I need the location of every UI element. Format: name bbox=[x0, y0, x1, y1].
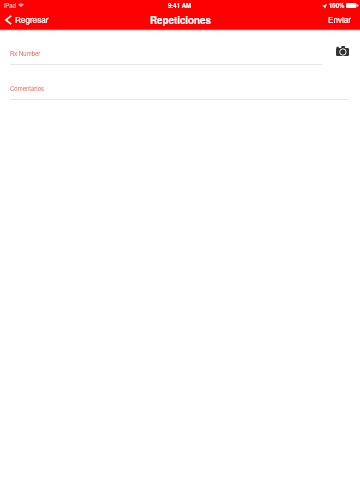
staticText: iPad bbox=[4, 1, 16, 10]
button[interactable]: Enviar bbox=[320, 10, 360, 29]
button[interactable]: Regresar bbox=[0, 10, 55, 29]
staticText: Comentarios bbox=[10, 84, 45, 93]
button[interactable]: Rx Number bbox=[10, 38, 322, 65]
staticText: 9:41 AM bbox=[168, 1, 192, 10]
staticText: 100% bbox=[329, 1, 345, 10]
staticText: Enviar bbox=[328, 14, 352, 26]
staticText: Rx Number bbox=[10, 49, 41, 58]
staticText: Repeticiones bbox=[150, 13, 211, 27]
button[interactable]: Take photo bbox=[330, 40, 354, 62]
button[interactable]: Comentarios bbox=[10, 73, 348, 100]
staticText: Regresar bbox=[15, 14, 49, 26]
